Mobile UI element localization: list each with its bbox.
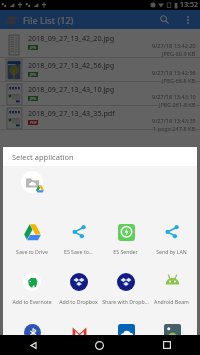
button[interactable]: Recent apps <box>133 335 200 355</box>
button[interactable]: Add to Evernote <box>8 266 55 316</box>
staticText: Select application <box>12 152 74 162</box>
staticText: 2018_09_27_13_42_56.jpg <box>28 60 115 70</box>
button[interactable]: Back <box>0 335 66 355</box>
staticText: PDF <box>30 120 37 125</box>
staticText: 9/27/18 13:43:35 <box>152 117 196 125</box>
button[interactable]: Send by LAN <box>149 216 194 266</box>
button[interactable]: 2018_09_27_13_43_10.jpg <box>0 82 200 106</box>
button[interactable]: Android Beam <box>149 266 194 316</box>
staticText: JPEG 66.5 KB <box>162 77 196 85</box>
staticText: JPEG 60.9 KB <box>162 50 196 58</box>
staticText: Share with Dropbox <box>102 298 149 305</box>
staticText: 2018_09_27_13_43_35.pdf <box>28 108 115 118</box>
button[interactable]: 2018_09_27_13_43_35.pdf <box>0 106 200 130</box>
staticText: Save to Drive <box>16 248 48 255</box>
button[interactable]: Share with Dropbox <box>102 266 149 316</box>
staticText: Send by LAN <box>156 248 187 255</box>
staticText: JPEG 261.8 KB <box>159 101 196 109</box>
staticText: 1 page 247.8 KB <box>153 125 196 133</box>
staticText: Add to Evernote <box>12 298 52 305</box>
button[interactable]: App icon <box>4 13 18 27</box>
staticText: ES Save to... <box>64 248 93 255</box>
staticText: 9/27/18 13:42:20 <box>152 42 196 50</box>
button[interactable]: ES Sender <box>102 216 149 266</box>
staticText: ES Sender <box>113 248 138 255</box>
staticText: 13:52 <box>180 0 198 10</box>
button[interactable]: OneDrive <box>102 316 149 355</box>
staticText: JPG <box>30 96 37 101</box>
button[interactable]: Search <box>155 10 174 29</box>
button[interactable]: 2018_09_27_13_42_56.jpg <box>0 58 200 82</box>
button[interactable]: Home <box>66 335 133 355</box>
button[interactable]: Save to Drive <box>8 216 55 266</box>
staticText: JPG <box>30 45 37 50</box>
staticText: 9/27/18 13:42:56 <box>152 69 196 77</box>
button[interactable]: Save to Drive folder <box>8 166 55 216</box>
staticText: 9/27/18 13:43:10 <box>152 93 196 101</box>
button[interactable]: Gmail <box>55 316 102 355</box>
button[interactable]: Add to Dropbox <box>55 266 102 316</box>
staticText: 2018_09_27_13_43_10.jpg <box>28 84 115 94</box>
staticText: 2018_09_27_13_42_20.jpg <box>28 33 115 43</box>
button[interactable]: Bluetooth <box>8 316 55 355</box>
staticText: Add to Dropbox <box>59 298 98 305</box>
staticText: Android Beam <box>154 298 189 305</box>
button[interactable]: More options <box>178 10 197 29</box>
button[interactable]: Screen share <box>149 316 194 355</box>
staticText: File List (12) <box>23 14 74 26</box>
button[interactable]: ES Save to... <box>55 216 102 266</box>
staticText: JPG <box>30 72 37 77</box>
button[interactable]: 2018_09_27_13_42_20.jpg <box>0 31 200 58</box>
